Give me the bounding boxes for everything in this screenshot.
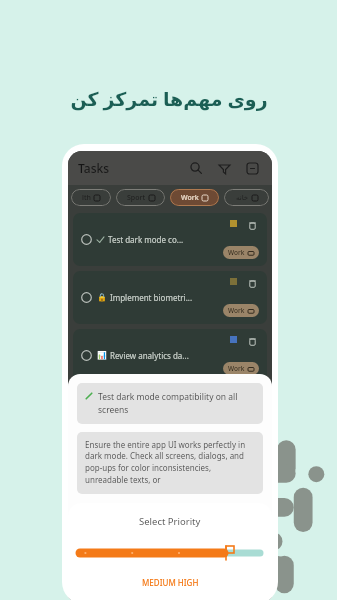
button[interactable]: Test dark mode compatibility on all scre… bbox=[77, 383, 263, 424]
button[interactable]: Filter bbox=[214, 158, 234, 178]
button[interactable]: Delete task bbox=[245, 276, 259, 290]
button[interactable]: 📊 bbox=[73, 329, 267, 382]
staticText: Work bbox=[228, 364, 245, 373]
button[interactable]: Delete task bbox=[245, 218, 259, 232]
button[interactable]: Work bbox=[223, 304, 259, 317]
button[interactable]: lth bbox=[71, 189, 111, 206]
button[interactable]: Test dark mode co... bbox=[73, 213, 267, 266]
staticText: Ensure the entire app UI works perfectly… bbox=[85, 439, 255, 486]
button[interactable]: Delete task bbox=[245, 334, 259, 348]
staticText: خانه bbox=[236, 194, 249, 202]
button[interactable]: Work bbox=[223, 362, 259, 375]
staticText: Test dark mode co... bbox=[108, 234, 184, 245]
button[interactable]: Priority slider bbox=[80, 545, 260, 561]
button[interactable]: Sport bbox=[116, 189, 165, 206]
button[interactable]: More options bbox=[242, 158, 262, 178]
staticText: lth bbox=[82, 193, 91, 203]
staticText: Select Priority bbox=[139, 515, 201, 528]
staticText: Work bbox=[228, 306, 245, 315]
staticText: Work bbox=[181, 193, 199, 203]
staticText: Implement biometri... bbox=[110, 292, 193, 303]
button[interactable]: Work bbox=[170, 189, 219, 206]
button[interactable]: 🔒 bbox=[73, 271, 267, 324]
staticText: Tasks bbox=[78, 160, 110, 176]
staticText: Work bbox=[228, 248, 245, 257]
staticText: Sport bbox=[127, 193, 146, 203]
button[interactable]: خانه bbox=[224, 189, 269, 206]
button[interactable]: Search bbox=[186, 158, 206, 178]
button[interactable]: Work bbox=[223, 246, 259, 259]
staticText: Test dark mode compatibility on all scre… bbox=[98, 391, 255, 416]
button[interactable]: Ensure the entire app UI works perfectly… bbox=[77, 432, 263, 494]
staticText: MEDIUM HIGH bbox=[142, 577, 199, 588]
staticText: روی مهم‌ها تمرکز کن bbox=[70, 86, 268, 112]
staticText: Review analytics da... bbox=[110, 350, 189, 361]
staticText: 🔒 bbox=[97, 293, 107, 302]
staticText: 📊 bbox=[97, 351, 107, 360]
